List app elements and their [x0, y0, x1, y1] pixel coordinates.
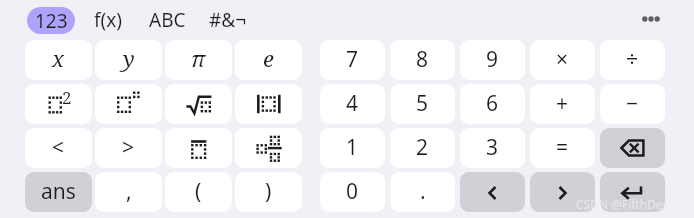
staticText: × — [556, 45, 569, 74]
staticText: 1 — [346, 133, 359, 162]
button[interactable]: More options — [636, 4, 666, 34]
button[interactable]: Move left — [460, 172, 525, 212]
button[interactable]: Power — [95, 84, 162, 124]
button[interactable]: ABC — [142, 3, 193, 37]
button[interactable]: ans — [25, 172, 92, 212]
button[interactable]: 7 — [320, 40, 385, 80]
staticText: x — [52, 43, 65, 73]
staticText: #&¬ — [209, 7, 247, 33]
staticText: 6 — [486, 89, 499, 118]
staticText: > — [122, 133, 135, 162]
button[interactable]: 9 — [460, 40, 525, 80]
button[interactable]: 3 — [460, 128, 525, 168]
button[interactable]: ) — [235, 172, 302, 212]
button[interactable]: Absolute value — [235, 84, 302, 124]
button[interactable]: #&¬ — [202, 3, 254, 37]
button[interactable]: 2 — [390, 128, 455, 168]
button[interactable]: ( — [165, 172, 232, 212]
button[interactable]: f(x) — [87, 3, 129, 37]
staticText: 2 — [62, 86, 72, 109]
staticText: CSDN @FifthDesign — [576, 196, 687, 212]
button[interactable]: y — [95, 40, 162, 80]
button[interactable]: x — [25, 40, 92, 80]
button[interactable]: 6 — [460, 84, 525, 124]
staticText: 0 — [346, 177, 359, 206]
button[interactable]: 1 — [320, 128, 385, 168]
staticText: < — [52, 133, 65, 162]
staticText: 5 — [416, 89, 429, 118]
button[interactable]: π — [165, 40, 232, 80]
button[interactable]: + — [530, 84, 595, 124]
staticText: f(x) — [94, 7, 122, 33]
staticText: ÷ — [626, 45, 639, 74]
staticText: 8 — [416, 45, 429, 74]
button[interactable]: Backspace — [600, 128, 665, 168]
button[interactable]: , — [95, 172, 162, 212]
button[interactable]: > — [95, 128, 162, 168]
staticText: . — [420, 177, 426, 206]
staticText: − — [626, 89, 639, 118]
button[interactable]: Move right — [530, 172, 595, 212]
staticText: , — [126, 177, 132, 206]
button[interactable]: 5 — [390, 84, 455, 124]
staticText: ans — [41, 177, 76, 206]
button[interactable]: 0 — [320, 172, 385, 212]
staticText: ( — [195, 177, 202, 206]
button[interactable]: ÷ — [600, 40, 665, 80]
button[interactable]: 4 — [320, 84, 385, 124]
button[interactable]: Square — [25, 84, 92, 124]
button[interactable]: Fraction — [235, 128, 302, 168]
staticText: π — [191, 43, 206, 73]
staticText: = — [556, 133, 569, 162]
button[interactable]: Enter — [600, 172, 665, 212]
staticText: + — [556, 89, 569, 118]
staticText: 3 — [486, 133, 499, 162]
button[interactable]: Overline — [165, 128, 232, 168]
button[interactable]: < — [25, 128, 92, 168]
button[interactable]: = — [530, 128, 595, 168]
staticText: 9 — [486, 45, 499, 74]
button[interactable]: Square root — [165, 84, 232, 124]
button[interactable]: × — [530, 40, 595, 80]
button[interactable]: 123 — [27, 7, 75, 34]
button[interactable]: − — [600, 84, 665, 124]
staticText: 2 — [416, 133, 429, 162]
button[interactable]: 8 — [390, 40, 455, 80]
staticText: e — [263, 43, 274, 73]
staticText: ABC — [149, 7, 186, 33]
staticText: 4 — [346, 89, 359, 118]
staticText: y — [123, 43, 135, 73]
staticText: 7 — [346, 45, 359, 74]
staticText: ) — [265, 177, 272, 206]
staticText: 123 — [35, 8, 68, 34]
button[interactable]: e — [235, 40, 302, 80]
button[interactable]: . — [390, 172, 455, 212]
